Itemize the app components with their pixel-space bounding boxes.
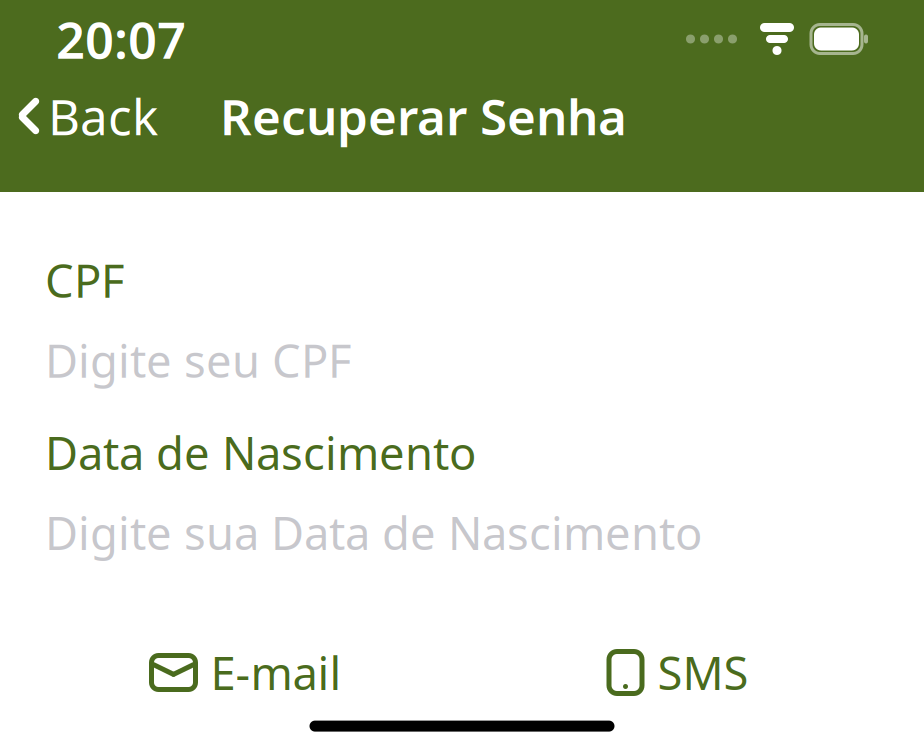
- staticText: Back: [48, 83, 158, 149]
- staticText: E-mail: [210, 642, 341, 703]
- button[interactable]: SMS: [595, 632, 760, 713]
- button[interactable]: Digite seu CPF: [45, 338, 879, 382]
- staticText: Recuperar Senha: [220, 83, 627, 149]
- staticText: 20:07: [56, 5, 186, 73]
- button[interactable]: Back: [0, 71, 158, 161]
- staticText: Data de Nascimento: [45, 422, 476, 482]
- staticText: Digite sua Data de Nascimento: [45, 502, 702, 562]
- button[interactable]: Digite sua Data de Nascimento: [45, 510, 879, 554]
- staticText: SMS: [657, 642, 748, 703]
- button[interactable]: E-mail: [138, 632, 353, 713]
- staticText: CPF: [45, 250, 125, 310]
- staticText: Digite seu CPF: [45, 330, 352, 390]
